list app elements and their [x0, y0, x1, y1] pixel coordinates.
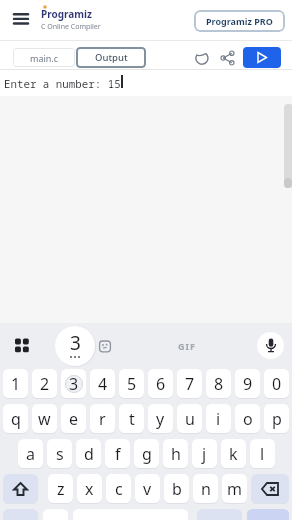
staticText: 6: [156, 373, 166, 395]
staticText: e: [69, 408, 79, 430]
staticText: j: [202, 443, 207, 465]
button[interactable]: h: [163, 439, 188, 468]
button[interactable]: b: [164, 474, 189, 503]
button[interactable]: e: [61, 404, 86, 433]
button[interactable]: [247, 509, 289, 520]
button[interactable]: v: [135, 474, 160, 503]
staticText: 8: [214, 373, 224, 395]
staticText: u: [185, 408, 195, 430]
staticText: main.c: [30, 52, 59, 64]
staticText: n: [201, 478, 211, 500]
button[interactable]: w: [32, 404, 57, 433]
button[interactable]: g: [134, 439, 159, 468]
staticText: x: [85, 478, 94, 500]
staticText: t: [129, 408, 135, 430]
button[interactable]: f: [105, 439, 130, 468]
button[interactable]: [243, 47, 281, 68]
button[interactable]: a: [18, 439, 43, 468]
staticText: 4: [98, 373, 108, 395]
button[interactable]: p: [264, 404, 289, 433]
button[interactable]: x: [77, 474, 102, 503]
button[interactable]: [257, 332, 284, 359]
button[interactable]: m: [222, 474, 247, 503]
button[interactable]: 1: [3, 369, 28, 398]
button[interactable]: c: [106, 474, 131, 503]
staticText: i: [216, 408, 221, 430]
button[interactable]: q: [3, 404, 28, 433]
staticText: 7: [185, 373, 195, 395]
staticText: y: [156, 408, 165, 430]
staticText: o: [243, 408, 253, 430]
button[interactable]: z: [48, 474, 73, 503]
button[interactable]: j: [192, 439, 217, 468]
button[interactable]: l: [250, 439, 275, 468]
staticText: Programiz PRO: [206, 15, 273, 27]
button[interactable]: i: [206, 404, 231, 433]
staticText: 5: [127, 373, 137, 395]
staticText: a: [26, 443, 35, 465]
button[interactable]: y: [148, 404, 173, 433]
button[interactable]: [99, 340, 111, 353]
button[interactable]: o: [235, 404, 260, 433]
staticText: s: [56, 443, 64, 465]
staticText: 2: [40, 373, 50, 395]
staticText: g: [142, 443, 152, 465]
staticText: p: [272, 408, 282, 430]
staticText: m: [227, 478, 242, 500]
staticText: c: [115, 478, 123, 500]
staticText: 0: [272, 373, 282, 395]
button[interactable]: Programiz PRO: [194, 10, 285, 32]
button[interactable]: main.c: [13, 48, 75, 67]
button[interactable]: 0: [264, 369, 289, 398]
button[interactable]: d: [76, 439, 101, 468]
button[interactable]: r: [90, 404, 115, 433]
button[interactable]: t: [119, 404, 144, 433]
button[interactable]: [14, 13, 28, 25]
button[interactable]: 8: [206, 369, 231, 398]
button[interactable]: [220, 50, 235, 65]
button[interactable]: [195, 50, 210, 65]
button[interactable]: [43, 509, 68, 520]
staticText: r: [99, 408, 106, 430]
button[interactable]: u: [177, 404, 202, 433]
button[interactable]: 3: [61, 369, 86, 398]
staticText: q: [11, 408, 21, 430]
button[interactable]: 7: [177, 369, 202, 398]
staticText: k: [229, 443, 238, 465]
staticText: f: [115, 443, 121, 465]
button[interactable]: [251, 474, 289, 503]
button[interactable]: s: [47, 439, 72, 468]
staticText: l: [260, 443, 265, 465]
staticText: C Online Compiler: [41, 22, 101, 32]
staticText: 1: [11, 373, 21, 395]
staticText: 3: [70, 330, 81, 356]
staticText: Programiz: [41, 7, 92, 21]
button[interactable]: Output: [76, 47, 146, 68]
button[interactable]: 4: [90, 369, 115, 398]
staticText: 3: [69, 373, 79, 395]
staticText: w: [38, 408, 51, 430]
button[interactable]: 5: [119, 369, 144, 398]
button[interactable]: GIF: [178, 340, 196, 352]
staticText: Enter a number: 15: [4, 76, 121, 91]
staticText: z: [57, 478, 65, 500]
staticText: h: [171, 443, 181, 465]
button[interactable]: 2: [32, 369, 57, 398]
button[interactable]: n: [193, 474, 218, 503]
button[interactable]: 6: [148, 369, 173, 398]
staticText: 9: [243, 373, 253, 395]
staticText: b: [172, 478, 182, 500]
button[interactable]: 9: [235, 369, 260, 398]
button[interactable]: [15, 338, 28, 352]
staticText: Output: [95, 51, 128, 64]
button[interactable]: [3, 474, 38, 503]
button[interactable]: k: [221, 439, 246, 468]
staticText: v: [143, 478, 152, 500]
staticText: d: [84, 443, 94, 465]
